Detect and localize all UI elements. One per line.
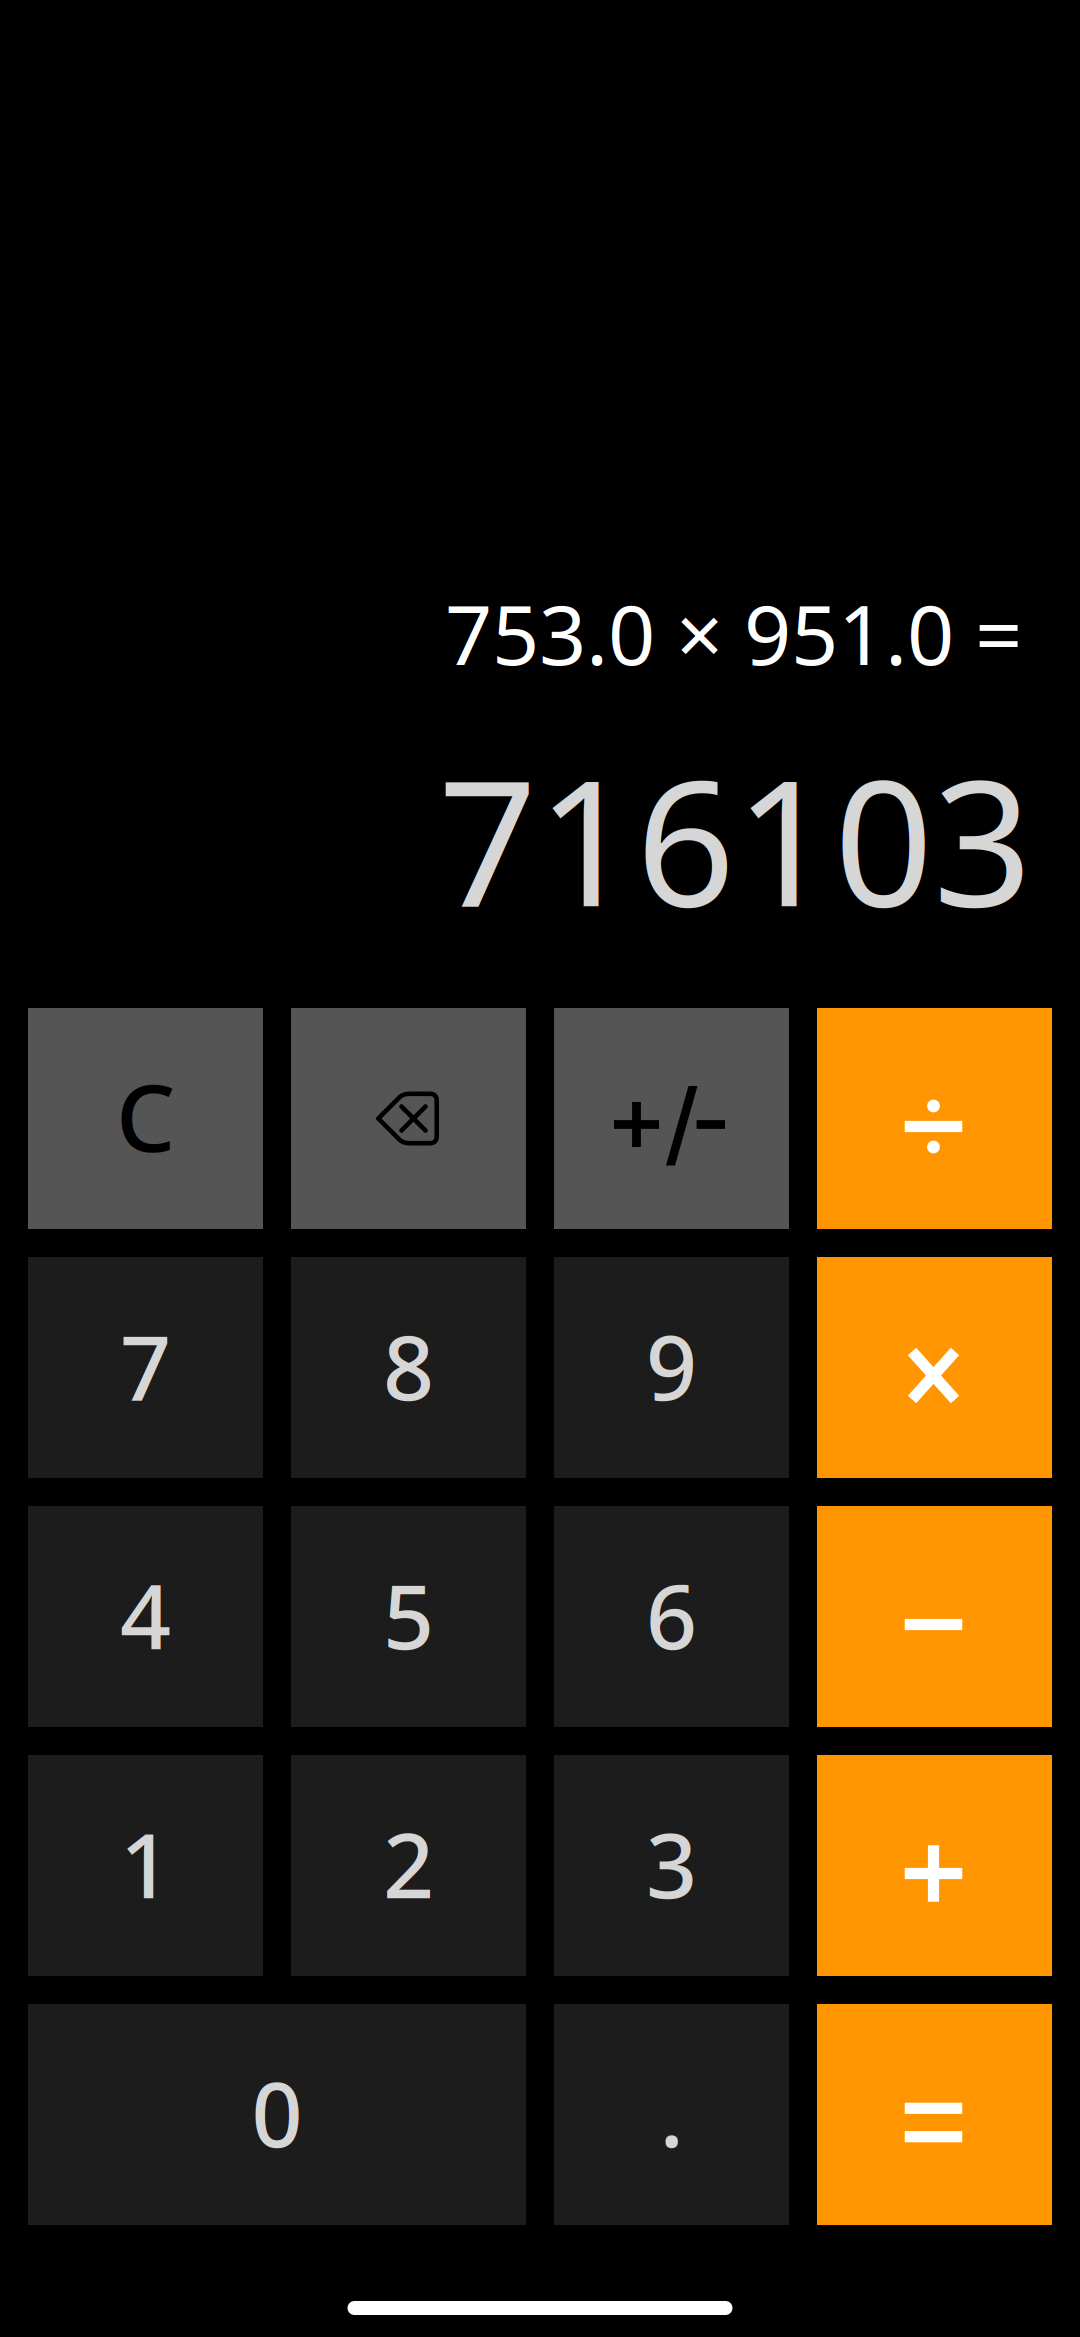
button[interactable]: 2 (291, 1755, 526, 1976)
staticText: C (116, 1053, 175, 1177)
staticText: 753.0 × 951.0 = (445, 578, 1022, 688)
button[interactable]: Minus (817, 1506, 1052, 1727)
staticText: 6 (646, 1555, 697, 1674)
staticText: 9 (646, 1306, 697, 1425)
button[interactable]: 7 (28, 1257, 263, 1478)
staticText: 5 (383, 1555, 434, 1674)
button[interactable]: Equals (817, 2004, 1052, 2225)
button[interactable]: 5 (291, 1506, 526, 1727)
button[interactable]: 8 (291, 1257, 526, 1478)
staticText: 3 (646, 1804, 697, 1923)
button[interactable]: 3 (554, 1755, 789, 1976)
button[interactable]: Plus Minus (554, 1008, 789, 1229)
button[interactable]: 4 (28, 1506, 263, 1727)
button[interactable]: Delete (291, 1008, 526, 1229)
staticText: 716103 (438, 724, 1032, 954)
staticText: . (659, 2053, 683, 2172)
staticText: 8 (383, 1306, 434, 1425)
button[interactable]: C (28, 1008, 263, 1229)
staticText: 1 (120, 1804, 171, 1923)
button[interactable]: Plus (817, 1755, 1052, 1976)
staticText: 0 (251, 2053, 302, 2172)
button[interactable]: 0 (28, 2004, 526, 2225)
button[interactable]: 1 (28, 1755, 263, 1976)
button[interactable]: Divide (817, 1008, 1052, 1229)
staticText: 7 (120, 1306, 171, 1425)
button[interactable]: 9 (554, 1257, 789, 1478)
staticText: 2 (383, 1804, 434, 1923)
button[interactable]: . (554, 2004, 789, 2225)
button[interactable]: Multiply (817, 1257, 1052, 1478)
staticText: 4 (120, 1555, 171, 1674)
button[interactable]: 6 (554, 1506, 789, 1727)
